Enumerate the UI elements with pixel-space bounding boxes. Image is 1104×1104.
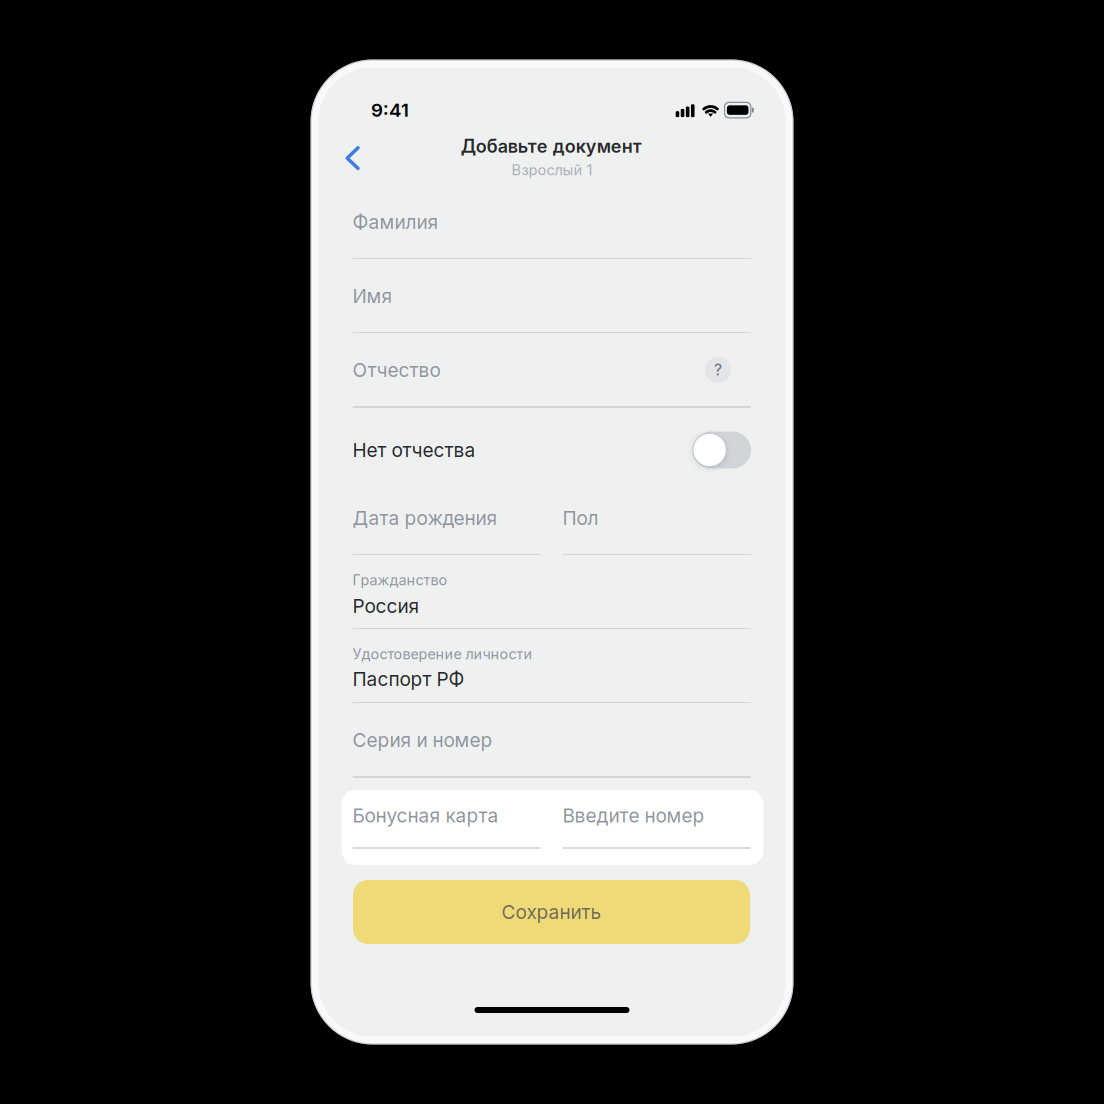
staticText: Имя (352, 284, 392, 308)
button[interactable]: Удостоверение личности: Паспорт РФ (352, 629, 751, 703)
staticText: Отчество (352, 358, 440, 382)
staticText: Удостоверение личности (352, 645, 532, 663)
staticText: Сохранить (501, 900, 601, 924)
staticText: Пол (562, 506, 598, 530)
staticText: Бонусная карта (352, 804, 498, 827)
staticText: Введите номер (562, 804, 704, 827)
staticText: 9:41 (371, 99, 409, 121)
staticText: Нет отчества (352, 438, 475, 462)
button[interactable]: Назад (331, 136, 375, 180)
staticText: Взрослый 1 (511, 161, 592, 179)
button[interactable]: Что такое отчество (705, 357, 731, 383)
staticText: Дата рождения (352, 506, 497, 530)
button[interactable]: Введите номер (562, 791, 757, 863)
button[interactable]: Гражданство: Россия (352, 555, 751, 629)
button[interactable]: Дата рождения (352, 481, 541, 555)
button[interactable]: Сохранить (353, 880, 750, 944)
button[interactable]: Бонусная карта (346, 791, 541, 863)
staticText: Гражданство (352, 571, 447, 589)
button[interactable]: Нет отчества (352, 413, 751, 487)
staticText: Паспорт РФ (352, 667, 464, 691)
button[interactable]: Имя (352, 259, 751, 333)
button[interactable]: Серия и номер (352, 703, 751, 777)
staticText: Россия (352, 594, 419, 618)
button[interactable]: Фамилия (352, 185, 751, 259)
button[interactable]: Отчество (352, 333, 751, 407)
button[interactable]: Пол (562, 481, 751, 555)
staticText: Серия и номер (352, 728, 492, 752)
staticText: Добавьте документ (461, 135, 642, 157)
staticText: Фамилия (352, 210, 438, 234)
staticText: ? (714, 361, 722, 379)
